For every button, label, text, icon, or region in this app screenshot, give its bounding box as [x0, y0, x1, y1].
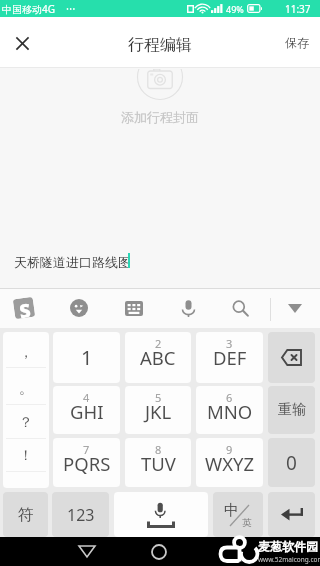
button[interactable]: 收起键盘 [273, 288, 317, 328]
staticText: 49% [226, 3, 244, 15]
staticText: 行程编辑 [128, 35, 192, 55]
button[interactable]: 退格 [268, 332, 315, 383]
button[interactable]: 8 [125, 438, 191, 487]
staticText: 。 [19, 380, 33, 398]
staticText: www.52maicong.com [258, 555, 320, 564]
staticText: 11:37 [285, 2, 311, 16]
staticText: 英 [242, 517, 252, 529]
staticText: 123 [67, 504, 95, 526]
staticText: JKL [145, 399, 172, 424]
staticText: 麦葱软件园 [258, 539, 318, 554]
staticText: 7 [83, 442, 90, 457]
staticText: WXYZ [205, 451, 255, 476]
staticText: 8 [155, 442, 162, 457]
staticText: 0 [286, 450, 297, 476]
staticText: 天桥隧道进口路线图 [14, 254, 131, 270]
button[interactable]: 7 [53, 438, 120, 487]
staticText: MNO [207, 399, 253, 424]
staticText: 符 [18, 505, 34, 525]
button[interactable]: 搜索 [218, 288, 263, 328]
button[interactable]: 搜狗输入法 [2, 288, 46, 328]
staticText: PQRS [63, 451, 111, 476]
staticText: 保存 [285, 35, 309, 50]
button[interactable]: 键盘设置 [111, 288, 156, 328]
staticText: ！ [19, 447, 33, 465]
button[interactable]: 2 [125, 332, 191, 383]
button[interactable]: 中英文切换 [213, 492, 263, 537]
staticText: 4 [83, 390, 90, 405]
staticText: 中 [224, 501, 239, 520]
staticText: 2 [155, 336, 162, 351]
button[interactable]: 保存 [285, 35, 309, 50]
staticText: TUV [141, 451, 176, 476]
button[interactable]: 5 [125, 386, 191, 434]
button[interactable]: 1 [53, 332, 120, 383]
staticText: S [18, 297, 31, 319]
staticText: DEF [213, 345, 247, 370]
staticText: 重输 [278, 401, 306, 419]
staticText: 1 [81, 344, 93, 371]
staticText: ABC [140, 345, 176, 370]
button[interactable]: 主页 [142, 537, 175, 566]
button[interactable]: 标点 [3, 332, 49, 488]
button[interactable]: 返回 [70, 537, 103, 566]
button[interactable]: 3 [196, 332, 263, 383]
button[interactable]: 表情 [56, 288, 101, 328]
staticText: 6 [226, 390, 233, 405]
staticText: ？ [19, 414, 33, 432]
staticText: ， [19, 344, 33, 362]
staticText: GHI [70, 399, 104, 424]
button[interactable]: 换行 [268, 492, 315, 537]
staticText: 添加行程封面 [121, 109, 199, 125]
button[interactable]: 空格 [114, 492, 208, 537]
button[interactable]: 0 [268, 438, 315, 487]
button[interactable]: 4 [53, 386, 120, 434]
button[interactable]: 添加行程封面 [0, 69, 320, 129]
button[interactable]: 6 [196, 386, 263, 434]
button[interactable]: 123 [52, 492, 109, 537]
button[interactable]: 9 [196, 438, 263, 487]
button[interactable]: 语音输入 [166, 288, 211, 328]
button[interactable]: 符号 [3, 492, 48, 537]
button[interactable]: 关闭 [10, 31, 35, 56]
button[interactable]: 重输 [268, 386, 315, 434]
staticText: 中国移动4G [2, 2, 55, 16]
staticText: 9 [226, 442, 233, 457]
staticText: 3 [226, 336, 233, 351]
staticText: 5 [155, 390, 162, 405]
